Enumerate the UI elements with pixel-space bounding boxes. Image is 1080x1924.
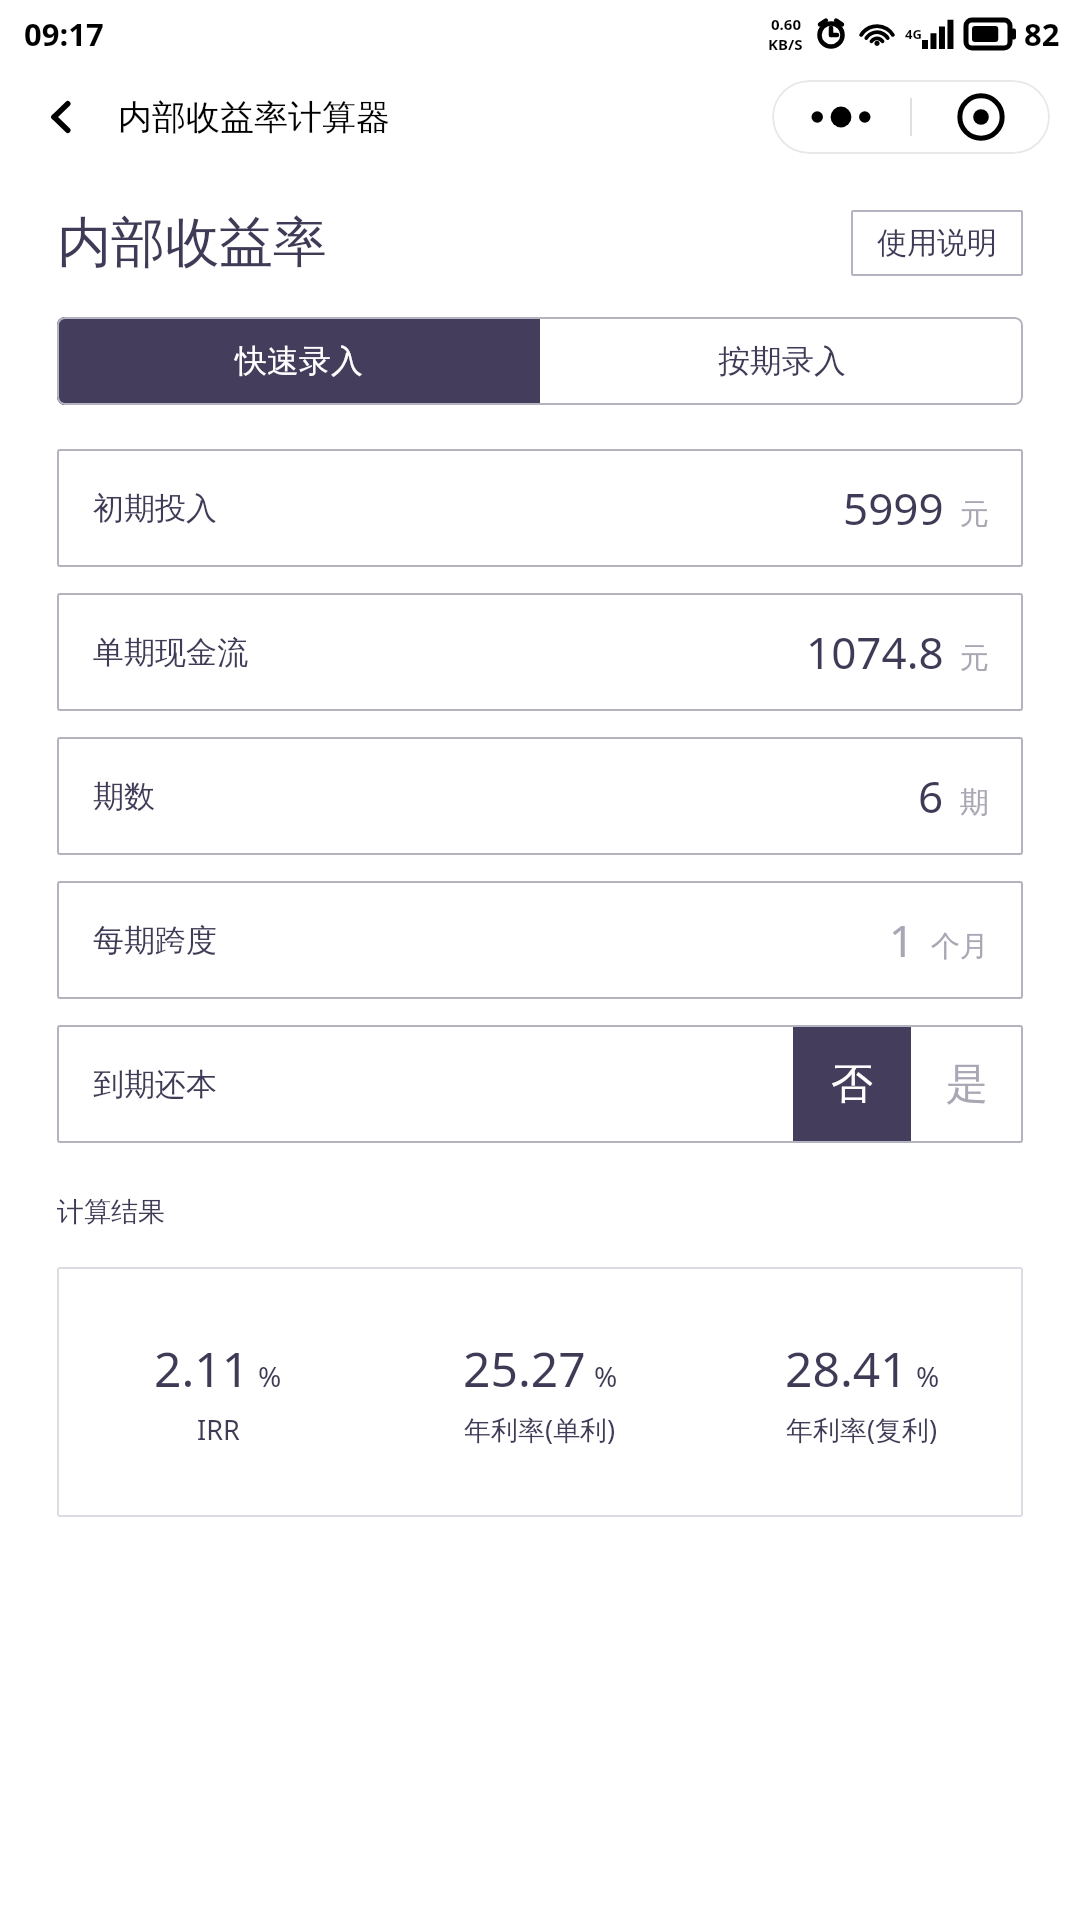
staticText: 初期投入 [93, 489, 217, 528]
staticText: 09:17 [24, 13, 104, 55]
staticText: KB/S [768, 34, 803, 54]
staticText: 25.27 [463, 1336, 586, 1401]
staticText: 个月 [931, 928, 989, 965]
staticText: 28.41 [785, 1336, 908, 1401]
staticText: 0.60 [771, 14, 801, 34]
button[interactable]: Close [912, 80, 1050, 154]
button[interactable]: 期数 [57, 737, 1023, 855]
staticText: 2.11 [154, 1336, 250, 1401]
staticText: % [916, 1357, 940, 1395]
staticText: 内部收益率计算器 [118, 96, 390, 139]
staticText: 单期现金流 [93, 633, 248, 672]
staticText: 否 [831, 1058, 873, 1111]
button[interactable]: 是 [911, 1025, 1023, 1143]
button[interactable]: 使用说明 [851, 210, 1023, 276]
staticText: % [258, 1357, 282, 1395]
staticText: 元 [960, 496, 989, 533]
staticText: 是 [946, 1058, 988, 1111]
staticText: 年利率(复利) [786, 1411, 938, 1448]
staticText: 元 [960, 640, 989, 677]
button[interactable]: 每期跨度 [57, 881, 1023, 999]
staticText: 1 [889, 910, 915, 970]
button[interactable]: More [772, 80, 910, 154]
staticText: 每期跨度 [93, 921, 217, 960]
button[interactable]: 到期还本 [57, 1025, 793, 1143]
button[interactable]: 否 [793, 1025, 911, 1143]
staticText: % [594, 1357, 618, 1395]
staticText: 6 [918, 766, 944, 826]
button[interactable]: Back [36, 93, 88, 141]
button[interactable]: 按期录入 [540, 317, 1023, 405]
staticText: 快速录入 [235, 341, 363, 381]
staticText: 1074.8 [806, 622, 944, 682]
staticText: 82 [1024, 13, 1060, 55]
button[interactable]: 初期投入 [57, 449, 1023, 567]
staticText: 4G [905, 25, 922, 43]
staticText: 到期还本 [93, 1065, 217, 1104]
staticText: IRR [197, 1411, 240, 1448]
staticText: 5999 [843, 478, 944, 538]
button[interactable]: 快速录入 [57, 317, 540, 405]
staticText: 内部收益率 [57, 209, 327, 277]
staticText: 计算结果 [57, 1195, 165, 1229]
staticText: 期 [960, 784, 989, 821]
staticText: 年利率(单利) [464, 1411, 616, 1448]
staticText: 期数 [93, 777, 155, 816]
button[interactable]: 2.11 [57, 1267, 1023, 1517]
staticText: 使用说明 [877, 224, 997, 262]
button[interactable]: 单期现金流 [57, 593, 1023, 711]
staticText: 按期录入 [718, 341, 846, 381]
